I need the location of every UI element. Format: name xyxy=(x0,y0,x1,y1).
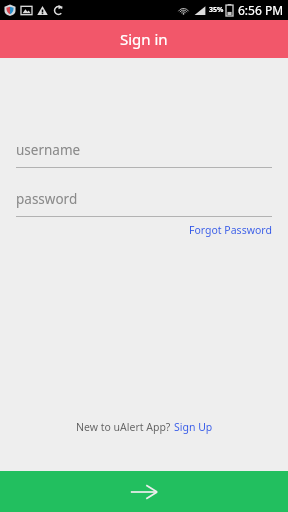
staticText: Forgot Password xyxy=(189,223,272,237)
button[interactable]: password xyxy=(0,188,288,217)
button[interactable]: username xyxy=(0,139,288,168)
staticText: New to uAlert App? xyxy=(76,420,174,434)
staticText: username xyxy=(16,141,81,159)
button[interactable]: Sign Up xyxy=(174,420,213,434)
button[interactable]: Forgot Password xyxy=(189,221,272,239)
staticText: password xyxy=(16,190,78,208)
staticText: Sign Up xyxy=(174,420,213,434)
staticText: 35% xyxy=(209,5,224,15)
staticText: 6:56 PM xyxy=(238,2,284,18)
staticText: Sign in xyxy=(120,29,168,49)
button[interactable]: Continue xyxy=(0,471,288,512)
